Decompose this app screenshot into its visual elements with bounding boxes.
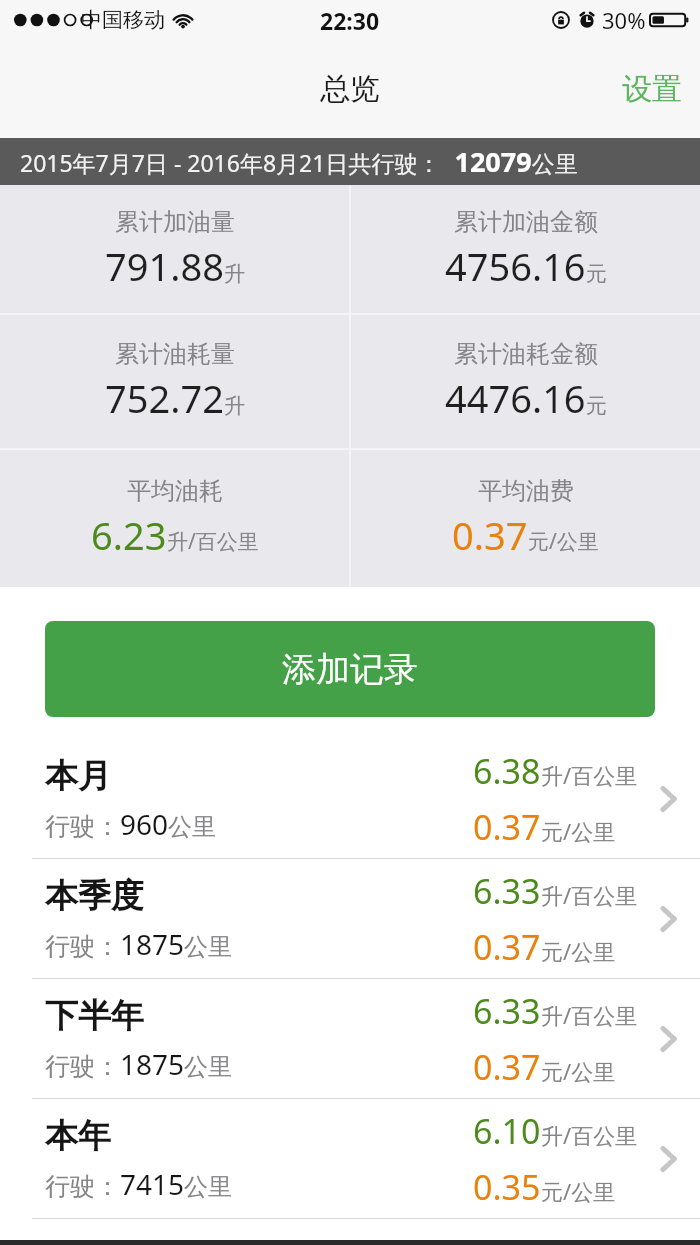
staticText: 累计油耗金额: [454, 339, 598, 369]
button[interactable]: 本月: [0, 739, 700, 858]
staticText: 升: [224, 393, 245, 419]
staticText: 元: [586, 261, 607, 287]
button[interactable]: 累计油耗量: [0, 315, 349, 448]
staticText: 0.37: [473, 804, 541, 850]
staticText: 6.23: [91, 509, 167, 561]
button[interactable]: 添加记录: [45, 621, 655, 717]
staticText: 本月: [45, 755, 111, 797]
staticText: 4756.16: [445, 240, 586, 292]
staticText: 累计加油量: [115, 207, 235, 237]
staticText: 元/公里: [528, 527, 599, 556]
other: 查看详情: [638, 1099, 700, 1218]
button[interactable]: 设置: [604, 58, 700, 120]
button[interactable]: 本季度: [0, 859, 700, 978]
staticText: 行驶：7415公里: [45, 1165, 233, 1203]
staticText: 平均油耗: [127, 476, 223, 506]
staticText: 22:30: [320, 5, 380, 36]
staticText: 791.88: [105, 240, 224, 292]
button[interactable]: 平均油费: [351, 450, 700, 587]
staticText: 升/百公里: [541, 1000, 638, 1030]
staticText: 0.37: [452, 509, 528, 561]
staticText: 升: [224, 261, 245, 287]
staticText: 元/公里: [541, 1056, 616, 1086]
staticText: 升/百公里: [541, 880, 638, 910]
staticText: 升/百公里: [541, 760, 638, 790]
staticText: 元/公里: [541, 1176, 616, 1206]
other: 查看详情: [638, 859, 700, 978]
staticText: 元: [586, 393, 607, 419]
staticText: 总览: [320, 70, 380, 108]
staticText: 6.38: [473, 748, 541, 794]
staticText: 6.33: [473, 988, 541, 1034]
staticText: 0.35: [473, 1164, 541, 1210]
staticText: 本季度: [45, 875, 144, 917]
staticText: 30%: [602, 5, 646, 35]
staticText: 行驶：1875公里: [45, 1045, 233, 1083]
button[interactable]: 平均油耗: [0, 450, 349, 587]
staticText: 设置: [622, 70, 682, 108]
staticText: 下半年: [45, 995, 144, 1037]
staticText: 累计加油金额: [454, 207, 598, 237]
staticText: 升/百公里: [167, 527, 259, 556]
button[interactable]: 累计加油量: [0, 185, 349, 313]
other: 查看详情: [638, 979, 700, 1098]
staticText: 6.33: [473, 868, 541, 914]
other: 查看详情: [638, 739, 700, 858]
staticText: 平均油费: [478, 476, 574, 506]
staticText: 累计油耗量: [115, 339, 235, 369]
staticText: 0.37: [473, 1044, 541, 1090]
button[interactable]: 累计油耗金额: [351, 315, 700, 448]
staticText: 中国移动: [81, 7, 165, 33]
staticText: 752.72: [105, 372, 224, 424]
staticText: 本年: [45, 1115, 111, 1157]
button[interactable]: 累计加油金额: [351, 185, 700, 313]
button[interactable]: 下半年: [0, 979, 700, 1098]
staticText: 元/公里: [541, 936, 616, 966]
staticText: 6.10: [473, 1108, 541, 1154]
staticText: 添加记录: [282, 648, 418, 691]
button[interactable]: 本年: [0, 1099, 700, 1218]
staticText: 4476.16: [445, 372, 586, 424]
staticText: 行驶：1875公里: [45, 925, 233, 963]
staticText: 行驶：960公里: [45, 805, 217, 843]
staticText: 升/百公里: [541, 1120, 638, 1150]
staticText: 元/公里: [541, 816, 616, 846]
staticText: 2015年7月7日 - 2016年8月21日共行驶： 12079公里: [20, 143, 578, 180]
staticText: 0.37: [473, 924, 541, 970]
